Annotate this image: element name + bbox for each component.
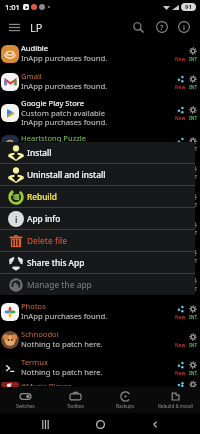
staticText: 1:01 <box>5 2 20 12</box>
staticText: InApp purchases found. <box>21 53 108 63</box>
staticText: Netflix <box>21 245 45 255</box>
button[interactable]: Google Play Store <box>0 96 200 130</box>
staticText: Nothing to patch here. <box>21 367 103 377</box>
staticText: New <box>175 342 186 348</box>
button[interactable]: Share this App <box>0 252 195 273</box>
button[interactable]: Help <box>152 17 172 37</box>
staticText: INT <box>189 314 198 320</box>
staticText: InApp purchases found. <box>21 143 108 153</box>
staticText: Switches <box>16 403 35 409</box>
staticText: INT <box>189 202 198 208</box>
staticText: Uninstall and install <box>27 169 106 180</box>
staticText: ? <box>160 22 164 32</box>
staticText: New <box>175 370 186 376</box>
button[interactable]: Uninstall and install <box>0 164 195 185</box>
staticText: New <box>175 202 186 208</box>
button[interactable]: Lightroom <box>0 186 200 214</box>
staticText: Share this App <box>27 257 85 268</box>
staticText: Audible <box>21 43 49 53</box>
staticText: #Music Player <box>21 381 71 386</box>
button[interactable]: Nova Launcher <box>0 270 200 298</box>
staticText: LP <box>30 20 43 35</box>
button[interactable]: Info <box>174 17 194 37</box>
staticText: INT <box>189 286 198 292</box>
staticText: i <box>15 214 18 225</box>
button[interactable]: Switches <box>0 387 50 413</box>
staticText: InApp purchases found. <box>21 199 108 209</box>
staticText: InApp purchases found. <box>21 81 108 91</box>
button[interactable]: Maps <box>0 214 200 242</box>
button[interactable]: Audible <box>0 40 200 68</box>
staticText: Termux <box>21 357 48 367</box>
button[interactable]: Navigation menu <box>4 17 24 37</box>
button[interactable]: Gmail <box>0 68 200 96</box>
button[interactable]: Netflix <box>0 242 200 270</box>
staticText: New <box>175 56 186 62</box>
staticText: Schnoodoi <box>21 329 59 339</box>
staticText: Nothing to patch here. <box>21 227 103 237</box>
staticText: INT <box>189 146 198 152</box>
button[interactable]: Toolbox <box>50 387 100 413</box>
staticText: Install <box>27 147 52 158</box>
staticText: App info <box>27 213 61 224</box>
button[interactable]: Search <box>128 17 148 37</box>
button[interactable]: Heartstong Puzzle <box>0 130 200 158</box>
staticText: InApp purchases found. <box>21 255 108 265</box>
staticText: Manage the app <box>27 279 92 290</box>
button[interactable]: Rebuild & install <box>150 387 200 413</box>
button[interactable]: Photos <box>0 298 200 326</box>
staticText: INT <box>189 115 198 121</box>
staticText: New <box>175 115 186 121</box>
staticText: Nova Launcher <box>21 273 75 283</box>
staticText: INT <box>189 342 198 348</box>
staticText: Lightroom <box>21 189 59 199</box>
staticText: Toolbox <box>67 403 84 409</box>
staticText: INT <box>189 370 198 376</box>
staticText: Backups <box>116 403 135 409</box>
staticText: InApp purchases found. <box>21 311 108 321</box>
staticText: INT <box>189 230 198 236</box>
button[interactable]: Rebuild <box>0 186 195 207</box>
staticText: i <box>183 22 185 32</box>
staticText: New <box>175 314 186 320</box>
button[interactable]: Back <box>145 414 165 434</box>
button[interactable]: Instagram <box>0 158 200 186</box>
button[interactable]: Termux <box>0 354 200 382</box>
staticText: INT <box>189 56 198 62</box>
staticText: Google Play Store <box>21 98 85 108</box>
staticText: INT <box>189 174 198 180</box>
button[interactable]: Install <box>0 142 195 163</box>
staticText: Heartstong Puzzle <box>21 133 87 143</box>
button[interactable]: Manage the app <box>0 274 195 295</box>
staticText: Rebuild <box>27 191 57 202</box>
staticText: Photos <box>21 301 46 311</box>
button[interactable]: Backups <box>100 387 150 413</box>
staticText: New <box>175 84 186 90</box>
button[interactable]: Home <box>90 414 110 434</box>
button[interactable]: i <box>0 208 195 229</box>
staticText: INT <box>189 258 198 264</box>
staticText: Maps <box>21 217 41 227</box>
button[interactable]: #Music Player <box>0 382 200 387</box>
staticText: InApp purchases found. <box>21 171 108 181</box>
button[interactable]: Recent apps <box>35 414 55 434</box>
staticText: Instagram <box>21 161 58 171</box>
staticText: Delete file <box>27 235 68 246</box>
staticText: INT <box>189 84 198 90</box>
staticText: 91 <box>185 3 192 11</box>
staticText: Rebuild & install <box>158 403 193 409</box>
staticText: Gmail <box>21 71 42 81</box>
staticText: Nothing to patch here. <box>21 339 103 349</box>
button[interactable]: Schnoodoi <box>0 326 200 354</box>
staticText: InApp purchases found. <box>21 283 108 293</box>
button[interactable]: Delete file <box>0 230 195 251</box>
staticText: Custom patch available InApp purchases f… <box>21 108 108 127</box>
